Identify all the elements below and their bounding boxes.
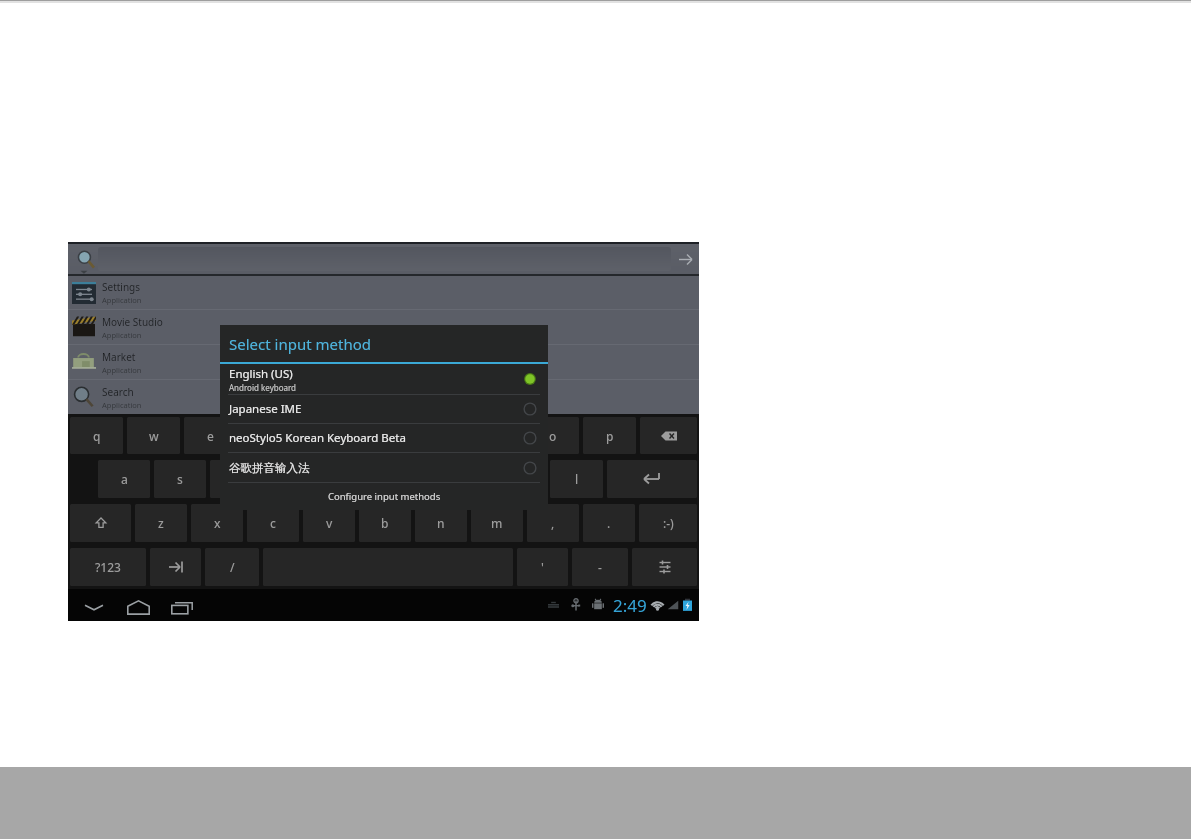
staticText: x <box>214 515 221 531</box>
button[interactable]: Search <box>68 380 699 414</box>
button[interactable]: c <box>247 504 299 542</box>
button[interactable]: d <box>210 460 262 498</box>
staticText: w <box>149 428 159 444</box>
button[interactable]: Configure input methods <box>220 483 548 510</box>
button[interactable]: r <box>241 417 294 454</box>
button[interactable]: o <box>526 417 579 454</box>
staticText: t <box>322 428 327 444</box>
staticText: s <box>177 471 183 487</box>
button[interactable]: w <box>127 417 180 454</box>
button[interactable] <box>607 460 697 498</box>
staticText: m <box>491 515 503 531</box>
button[interactable] <box>150 548 201 586</box>
button[interactable]: Go <box>671 242 699 276</box>
staticText: / <box>230 559 235 575</box>
button[interactable]: Recents <box>164 591 200 623</box>
button[interactable]: a <box>98 460 150 498</box>
button[interactable]: e <box>184 417 237 454</box>
button[interactable]: , <box>527 504 579 542</box>
button[interactable]: :-) <box>639 504 697 542</box>
staticText: Market <box>102 350 136 364</box>
staticText: p <box>606 428 614 444</box>
staticText: English (US) <box>229 366 293 382</box>
button[interactable]: p <box>583 417 636 454</box>
staticText: Application <box>102 330 142 340</box>
staticText: Search <box>102 385 134 399</box>
staticText: r <box>265 428 271 444</box>
button[interactable]: Japanese IME <box>220 395 548 423</box>
button[interactable]: l <box>550 460 603 498</box>
staticText: g <box>345 471 353 487</box>
button[interactable] <box>632 548 697 586</box>
staticText: k <box>516 471 523 487</box>
button[interactable]: ?123 <box>70 548 146 586</box>
staticText: Application <box>102 295 142 305</box>
button[interactable]: k <box>493 460 546 498</box>
button[interactable]: g <box>322 460 375 498</box>
button[interactable]: . <box>583 504 635 542</box>
button[interactable]: b <box>359 504 411 542</box>
button[interactable]: neoStylo5 Korean Keyboard Beta <box>220 424 548 452</box>
button[interactable]: u <box>412 417 465 454</box>
staticText: Japanese IME <box>229 401 302 417</box>
staticText: Select input method <box>229 334 371 354</box>
button[interactable]: j <box>436 460 489 498</box>
staticText: neoStylo5 Korean Keyboard Beta <box>229 430 406 446</box>
button[interactable]: s <box>154 460 206 498</box>
staticText: Settings <box>102 280 141 294</box>
button[interactable]: Movie Studio <box>68 310 699 344</box>
staticText: 谷歌拼音输入法 <box>229 461 310 475</box>
staticText: . <box>607 515 611 531</box>
button[interactable]: 谷歌拼音输入法 <box>220 453 548 482</box>
button[interactable]: f <box>266 460 318 498</box>
button[interactable]: h <box>379 460 432 498</box>
button[interactable]: Settings <box>68 276 699 309</box>
button[interactable]: y <box>355 417 408 454</box>
staticText: j <box>461 471 465 487</box>
staticText: o <box>549 428 557 444</box>
button[interactable]: Search <box>68 242 98 276</box>
staticText: Application <box>102 400 142 410</box>
button[interactable]: n <box>415 504 467 542</box>
button[interactable]: z <box>135 504 187 542</box>
staticText: b <box>381 515 389 531</box>
staticText: y <box>378 428 385 444</box>
button[interactable]: i <box>469 417 522 454</box>
button[interactable]: / <box>205 548 259 586</box>
button[interactable]: Back <box>76 591 112 623</box>
staticText: f <box>290 471 295 487</box>
button[interactable]: ' <box>517 548 568 586</box>
staticText: ?123 <box>95 559 121 575</box>
button[interactable] <box>98 247 671 271</box>
button[interactable]: v <box>303 504 355 542</box>
staticText: e <box>207 428 214 444</box>
button[interactable] <box>640 417 697 454</box>
staticText: Android keyboard <box>229 382 297 393</box>
staticText: Application <box>102 365 142 375</box>
staticText: - <box>598 559 602 575</box>
button[interactable]: - <box>572 548 628 586</box>
staticText: c <box>270 515 276 531</box>
staticText: d <box>232 471 240 487</box>
staticText: a <box>121 471 128 487</box>
button[interactable]: x <box>191 504 243 542</box>
staticText: q <box>93 428 101 444</box>
staticText: , <box>551 515 555 531</box>
staticText: 2:49 <box>613 594 647 617</box>
button[interactable]: English (US) <box>220 364 548 394</box>
staticText: :-) <box>663 515 674 531</box>
button[interactable]: t <box>298 417 351 454</box>
staticText: v <box>326 515 333 531</box>
button[interactable]: Home <box>120 591 156 623</box>
button[interactable] <box>70 504 131 542</box>
staticText: h <box>402 471 410 487</box>
staticText: Movie Studio <box>102 315 163 329</box>
button[interactable]: m <box>471 504 523 542</box>
button[interactable]: Market <box>68 345 699 379</box>
staticText: l <box>575 471 579 487</box>
button[interactable]: q <box>70 417 123 454</box>
staticText: z <box>158 515 164 531</box>
